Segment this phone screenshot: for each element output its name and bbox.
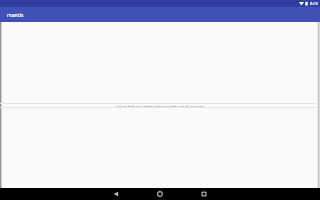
staticText: mantis: [7, 12, 24, 19]
button[interactable]: Back: [94, 188, 138, 200]
staticText: Let me help you getting those months out…: [116, 104, 204, 107]
button[interactable]: Recent apps: [182, 188, 226, 200]
staticText: 8:00: [310, 1, 318, 6]
button[interactable]: Home: [138, 188, 182, 200]
